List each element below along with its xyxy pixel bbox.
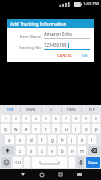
button[interactable]: d — [27, 135, 36, 144]
button[interactable]: 5 — [42, 115, 50, 122]
staticText: d — [30, 137, 33, 143]
staticText: 9 — [85, 117, 87, 121]
staticText: Done — [88, 160, 98, 165]
button[interactable]: √ — [42, 105, 61, 114]
staticText: OK — [82, 53, 88, 58]
button[interactable]: m — [78, 146, 86, 155]
staticText: 123456789 — [44, 42, 67, 48]
staticText: 8 — [75, 117, 77, 121]
button[interactable]: w — [12, 124, 20, 133]
button[interactable]: 7 — [62, 115, 70, 122]
staticText: t — [45, 126, 47, 132]
button[interactable]: b — [58, 146, 66, 155]
button[interactable]: n — [68, 146, 76, 155]
staticText: , — [26, 160, 28, 165]
button[interactable]: g — [48, 135, 56, 144]
button[interactable]: Space — [32, 157, 67, 168]
staticText: b — [61, 148, 64, 154]
button[interactable]: 3 — [22, 115, 30, 122]
button[interactable]: Hide keyboard — [70, 169, 89, 180]
button[interactable]: q — [1, 124, 10, 133]
button[interactable]: z — [16, 146, 25, 155]
button[interactable]: 8 — [72, 115, 80, 122]
button[interactable]: Recent apps — [51, 169, 70, 180]
button[interactable]: f — [38, 135, 46, 144]
button[interactable]: , — [24, 157, 30, 168]
staticText: a — [8, 137, 11, 143]
button[interactable]: j — [68, 135, 76, 144]
staticText: ON — [7, 107, 14, 112]
staticText: i — [75, 126, 77, 132]
staticText: Add Tracking Information — [10, 21, 67, 27]
staticText: 1:33 PM — [83, 1, 99, 7]
button[interactable]: CANCEL — [55, 52, 75, 59]
button[interactable]: i — [72, 124, 80, 133]
button[interactable]: 2 — [12, 115, 20, 122]
staticText: h — [61, 137, 64, 143]
staticText: 2 — [15, 117, 17, 121]
button[interactable]: Shift — [1, 146, 14, 155]
staticText: 1 — [5, 117, 7, 121]
staticText: Tracking No — [11, 45, 41, 50]
staticText: m — [80, 148, 85, 154]
button[interactable]: 9 — [82, 115, 90, 122]
button[interactable]: OK — [80, 52, 90, 59]
staticText: ONN — [26, 107, 36, 112]
staticText: Amazon Echo — [44, 31, 72, 37]
button[interactable]: l — [88, 135, 96, 144]
button[interactable]: p — [92, 124, 100, 133]
button[interactable]: Backspace — [88, 146, 100, 155]
button[interactable]: D.F — [82, 105, 101, 114]
button[interactable]: s — [16, 135, 25, 144]
button[interactable]: DMS — [62, 105, 81, 114]
button[interactable]: . — [69, 157, 75, 168]
button[interactable]: r — [32, 124, 40, 133]
staticText: 6 — [55, 117, 57, 121]
button[interactable]: t — [42, 124, 50, 133]
staticText: 4 — [35, 117, 37, 121]
button[interactable]: Voice input — [77, 157, 84, 168]
button[interactable]: 4 — [32, 115, 40, 122]
staticText: 7 — [65, 117, 67, 121]
staticText: e — [25, 126, 28, 132]
staticText: r — [35, 126, 37, 132]
staticText: w — [14, 126, 18, 132]
staticText: c — [41, 148, 44, 154]
staticText: p — [95, 126, 98, 132]
button[interactable]: y — [52, 124, 60, 133]
staticText: x — [30, 148, 33, 154]
staticText: g — [51, 137, 54, 143]
button[interactable]: Emoji — [1, 157, 11, 168]
button[interactable]: 1 — [1, 115, 10, 122]
staticText: 0 — [95, 117, 97, 121]
button[interactable]: ON — [0, 105, 20, 114]
staticText: ?123 — [14, 160, 22, 165]
button[interactable]: Done — [86, 157, 100, 168]
button[interactable]: u — [62, 124, 70, 133]
button[interactable]: 0 — [92, 115, 100, 122]
staticText: 3 — [25, 117, 27, 121]
staticText: o — [85, 126, 88, 132]
staticText: s — [19, 137, 22, 143]
staticText: l — [91, 137, 93, 143]
button[interactable]: ONN — [21, 105, 41, 114]
button[interactable]: a — [5, 135, 14, 144]
button[interactable]: Back — [13, 169, 32, 180]
staticText: k — [81, 137, 84, 143]
button[interactable]: v — [48, 146, 56, 155]
button[interactable]: h — [58, 135, 66, 144]
staticText: . — [71, 160, 73, 165]
button[interactable]: 6 — [52, 115, 60, 122]
button[interactable]: x — [27, 146, 36, 155]
staticText: z — [19, 148, 22, 154]
staticText: u — [65, 126, 68, 132]
button[interactable]: e — [22, 124, 30, 133]
button[interactable]: Home — [32, 169, 51, 180]
staticText: j — [71, 137, 73, 143]
button[interactable]: ?123 — [13, 157, 22, 168]
button[interactable]: k — [78, 135, 86, 144]
button[interactable]: o — [82, 124, 90, 133]
button[interactable]: c — [38, 146, 46, 155]
staticText: f — [41, 137, 43, 143]
staticText: n — [71, 148, 74, 154]
